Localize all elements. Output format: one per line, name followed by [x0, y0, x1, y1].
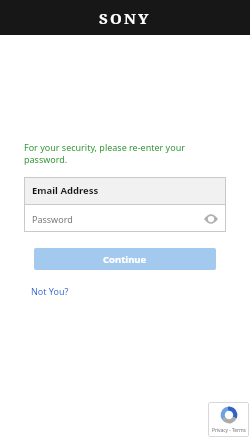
staticText: Privacy - Terms [212, 427, 246, 434]
button[interactable]: Password [24, 205, 226, 232]
staticText: Continue [103, 253, 147, 266]
staticText: SONY [99, 8, 151, 28]
staticText: For your security, please re-enter your … [24, 141, 185, 165]
button[interactable]: Continue [34, 248, 216, 270]
button[interactable]: Not You? [31, 285, 69, 297]
staticText: Password [32, 213, 73, 225]
button[interactable]: Email Address [24, 177, 226, 204]
staticText: Email Address [32, 184, 99, 197]
staticText: Not You? [31, 285, 69, 297]
button[interactable]: Privacy - Terms [208, 402, 249, 437]
button[interactable]: SONY [0, 0, 250, 35]
